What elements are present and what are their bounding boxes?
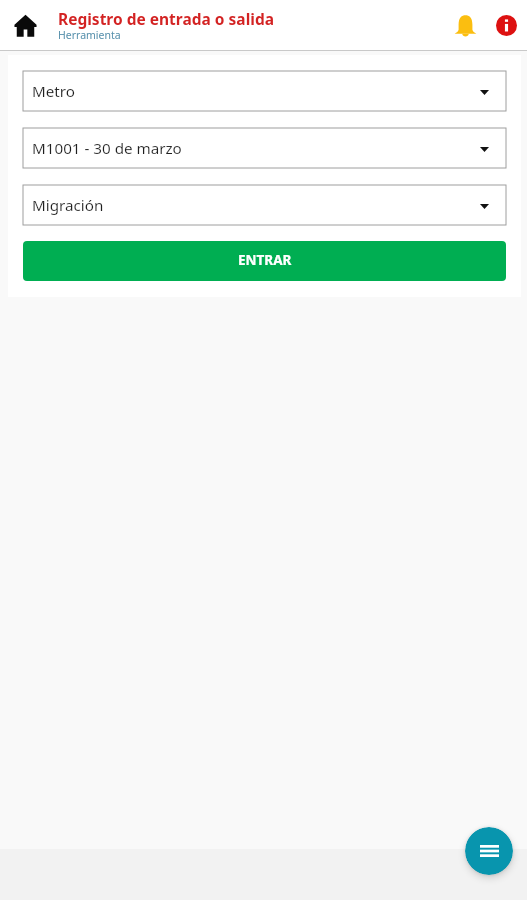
staticText: Metro [32, 81, 75, 102]
staticText: M1001 - 30 de marzo [32, 138, 182, 159]
button[interactable]: Menu [465, 827, 513, 875]
button[interactable]: Information [489, 8, 523, 42]
button[interactable]: Metro [23, 71, 506, 111]
button[interactable]: ENTRAR [23, 241, 506, 281]
staticText: Registro de entrada o salida [58, 8, 274, 29]
button[interactable]: M1001 - 30 de marzo [23, 128, 506, 168]
button[interactable]: Home [9, 9, 41, 41]
button[interactable]: Migración [23, 185, 506, 225]
staticText: Herramienta [58, 28, 121, 42]
staticText: Migración [32, 195, 104, 216]
staticText: ENTRAR [238, 251, 292, 269]
button[interactable]: Notifications [447, 7, 483, 43]
